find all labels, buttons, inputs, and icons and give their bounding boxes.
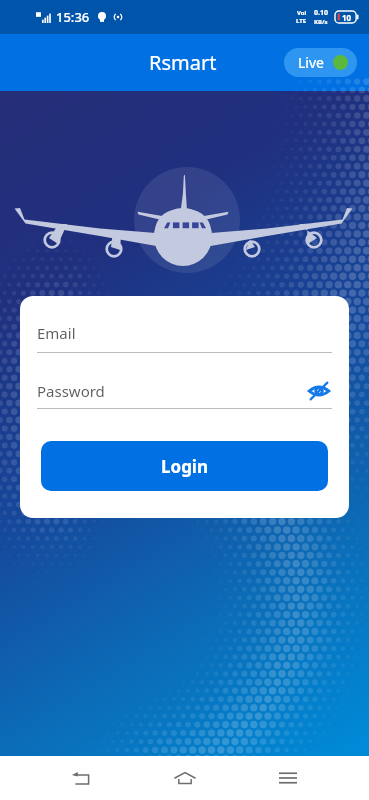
staticText: LTE [296,17,307,25]
staticText: Live [298,53,324,72]
staticText: 15:36 [56,8,90,26]
staticText: KB/s [314,18,328,26]
button[interactable]: Recent apps [266,756,310,800]
button[interactable]: Live [284,48,357,77]
staticText: Password [37,381,105,401]
button[interactable]: Back [59,756,103,800]
staticText: Vol [297,9,307,17]
staticText: 0.10 [314,8,328,18]
staticText: 10 [342,12,352,23]
button[interactable]: Show password [306,378,332,404]
button[interactable]: Login [41,441,328,491]
staticText: Email [37,323,76,343]
button[interactable]: Home [163,756,207,800]
staticText: Rsmart [149,49,217,76]
staticText: Login [161,455,209,478]
